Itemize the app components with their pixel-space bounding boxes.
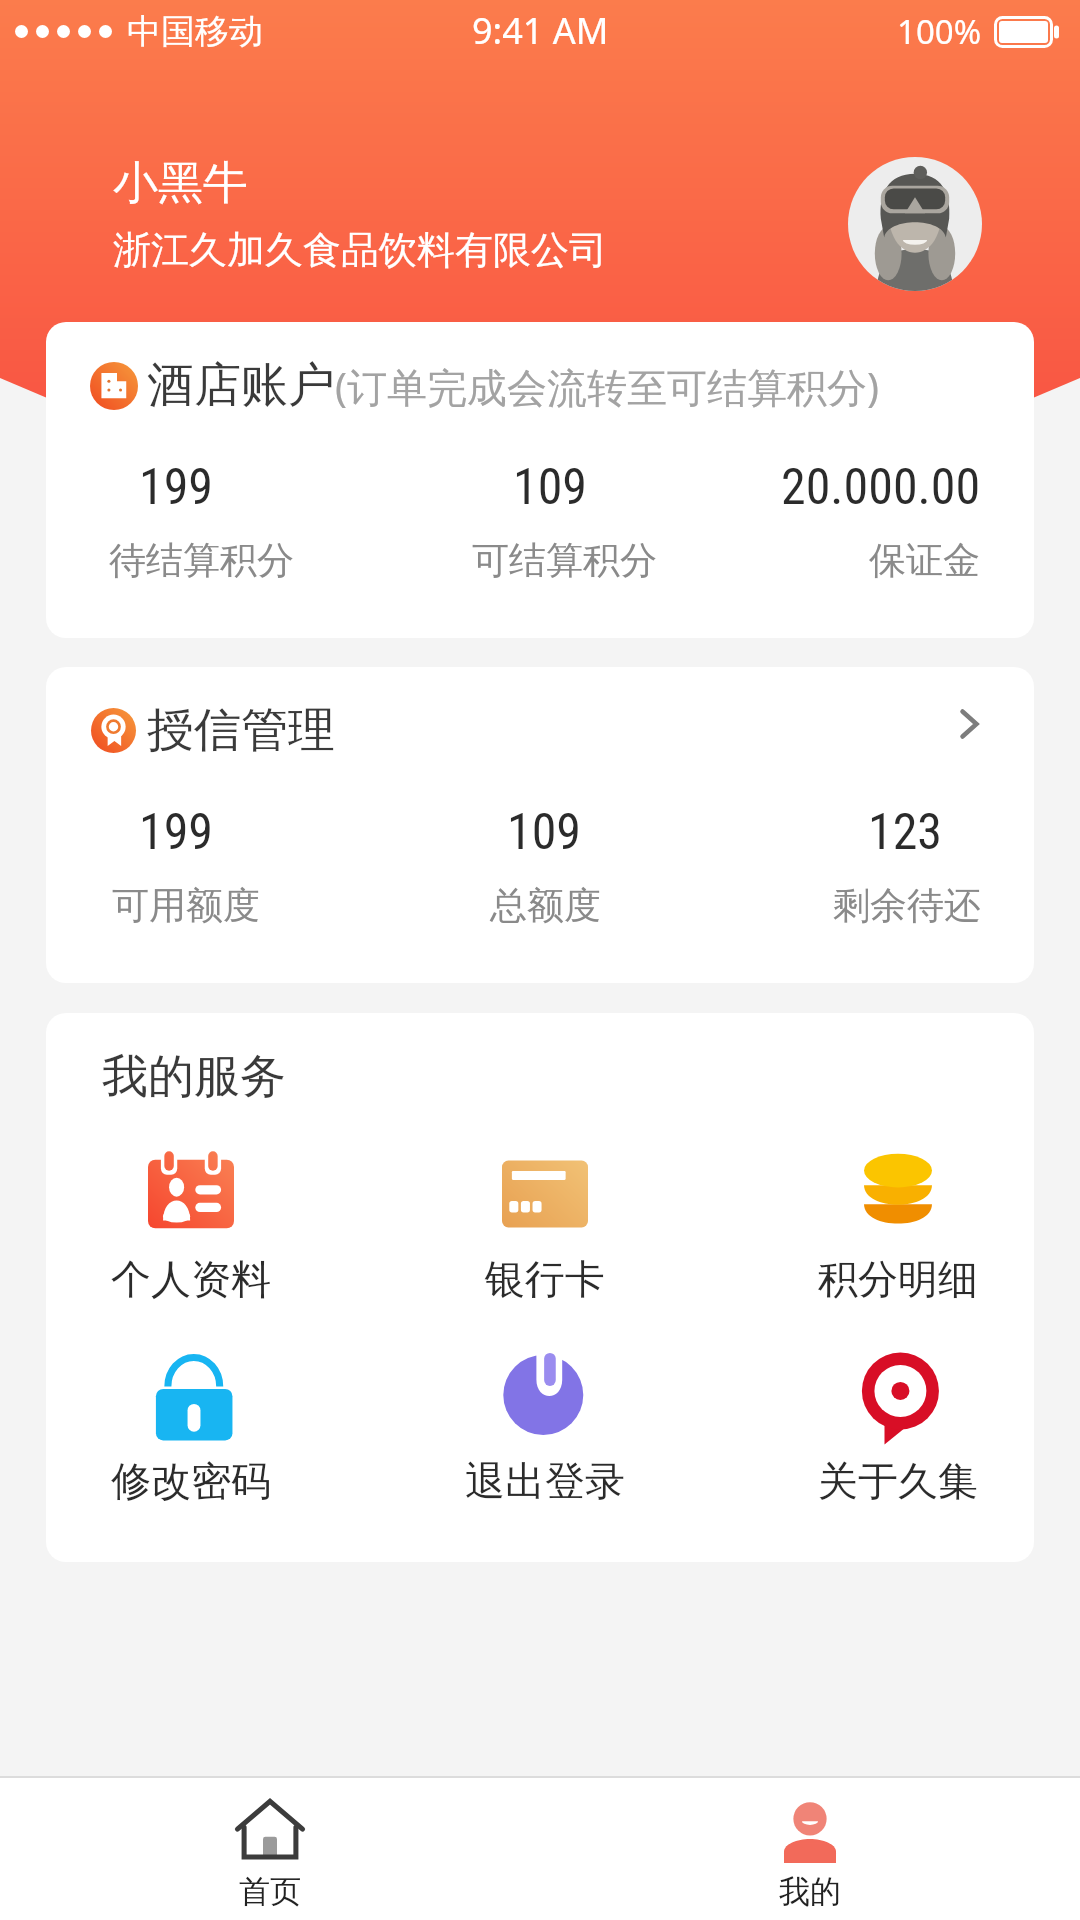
staticText: 109: [507, 803, 582, 862]
staticText: 小黑牛: [113, 155, 248, 212]
staticText: 100%: [897, 9, 982, 54]
button[interactable]: 积分明细: [721, 1150, 1034, 1304]
staticText: 银行卡: [485, 1254, 605, 1304]
staticText: 积分明细: [818, 1254, 978, 1304]
button[interactable]: 我的: [540, 1778, 1080, 1920]
staticText: 中国移动: [127, 10, 263, 53]
staticText: 109: [513, 458, 588, 517]
staticText: 可用额度: [112, 882, 260, 929]
button[interactable]: 用户头像: [848, 157, 982, 291]
staticText: 浙江久加久食品饮料有限公司: [113, 226, 607, 274]
button[interactable]: 修改密码: [46, 1352, 368, 1506]
staticText: 199: [139, 458, 214, 517]
button[interactable]: 个人资料: [46, 1150, 368, 1304]
staticText: 123: [868, 803, 943, 862]
staticText: 9:41 AM: [472, 6, 609, 55]
staticText: 退出登录: [465, 1456, 625, 1506]
staticText: 酒店账户: [147, 356, 335, 415]
staticText: 授信管理: [147, 701, 335, 760]
staticText: 待结算积分: [109, 537, 294, 584]
staticText: 首页: [239, 1872, 301, 1911]
other: 查看授信管理详情: [934, 689, 1004, 759]
staticText: 个人资料: [111, 1254, 271, 1304]
button[interactable]: 银行卡: [368, 1150, 721, 1304]
staticText: 剩余待还: [833, 882, 981, 929]
button[interactable]: 关于久集: [721, 1352, 1034, 1506]
staticText: (订单完成会流转至可结算积分): [335, 359, 879, 414]
staticText: 20.000.00: [781, 458, 981, 517]
staticText: 199: [139, 803, 214, 862]
staticText: 我的: [779, 1872, 841, 1911]
staticText: 保证金: [869, 537, 980, 584]
staticText: 关于久集: [818, 1456, 978, 1506]
staticText: 总额度: [490, 882, 601, 929]
button[interactable]: 授信管理: [46, 681, 1034, 775]
button[interactable]: 退出登录: [368, 1352, 721, 1506]
staticText: 我的服务: [102, 1048, 286, 1106]
staticText: 修改密码: [111, 1456, 271, 1506]
staticText: 可结算积分: [472, 537, 657, 584]
button[interactable]: 首页: [0, 1778, 540, 1920]
